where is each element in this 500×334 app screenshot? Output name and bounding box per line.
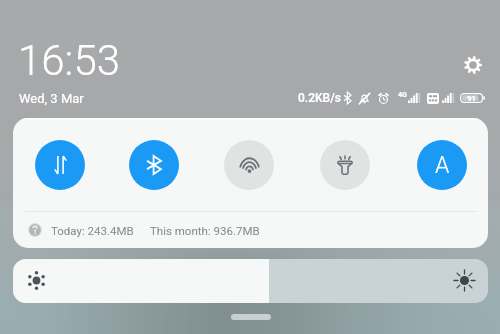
button[interactable]: Mobile data (35, 140, 85, 190)
button[interactable]: Bluetooth (129, 140, 179, 190)
staticText: 4G (398, 91, 407, 99)
staticText: Wed, 3 Mar (19, 91, 84, 106)
staticText: 16:53 (18, 36, 121, 85)
button[interactable]: Settings (458, 50, 487, 79)
staticText: Today: 243.4MB (51, 224, 134, 237)
button[interactable]: Today: 243.4MB (13, 212, 488, 248)
button[interactable]: Wi-Fi (224, 140, 274, 190)
staticText: A (435, 152, 450, 179)
staticText: 0.2KB/s (298, 91, 341, 105)
button[interactable]: Brightness (13, 259, 488, 303)
staticText: 91 (467, 94, 477, 103)
staticText: This month: 936.7MB (150, 224, 260, 237)
button[interactable]: Flashlight (320, 140, 370, 190)
button[interactable]: Auto brightness (417, 140, 467, 190)
